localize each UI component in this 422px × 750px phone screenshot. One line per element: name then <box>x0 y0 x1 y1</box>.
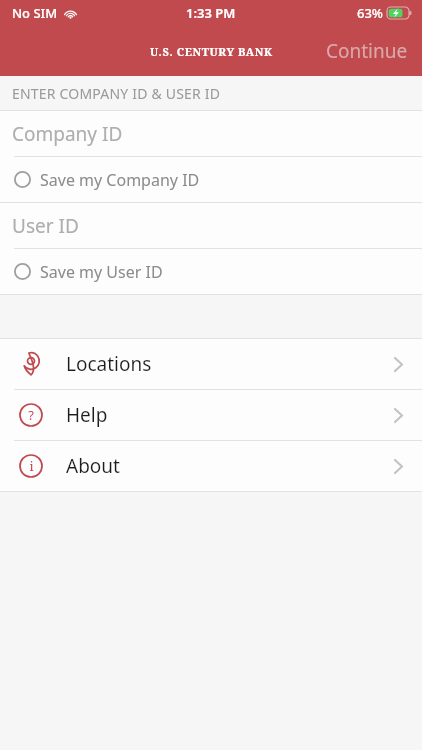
staticText: Continue <box>326 38 408 64</box>
other: Open <box>388 405 408 425</box>
staticText: No SIM <box>12 4 58 22</box>
button[interactable]: Locations <box>0 339 422 389</box>
staticText: i <box>29 457 34 475</box>
button[interactable]: ? <box>0 390 422 440</box>
staticText: About <box>66 453 388 479</box>
staticText: 63% <box>357 4 383 22</box>
staticText: U.S. CENTURY BANK <box>150 44 273 59</box>
staticText: Locations <box>66 351 388 377</box>
staticText: 1:33 PM <box>186 4 236 22</box>
staticText: Save my Company ID <box>40 169 200 191</box>
button[interactable]: Save my User ID <box>0 249 422 294</box>
button[interactable]: Save my Company ID <box>0 157 422 202</box>
other: Open <box>388 456 408 476</box>
button[interactable]: Continue <box>312 30 422 72</box>
button[interactable]: User ID <box>0 203 422 248</box>
staticText: User ID <box>12 213 79 239</box>
other: Open <box>388 354 408 374</box>
button[interactable]: Company ID <box>0 111 422 156</box>
staticText: ENTER COMPANY ID & USER ID <box>12 84 221 103</box>
button[interactable]: i <box>0 441 422 491</box>
staticText: Company ID <box>12 121 123 147</box>
staticText: Help <box>66 402 388 428</box>
staticText: ? <box>28 406 34 424</box>
staticText: Save my User ID <box>40 261 163 283</box>
